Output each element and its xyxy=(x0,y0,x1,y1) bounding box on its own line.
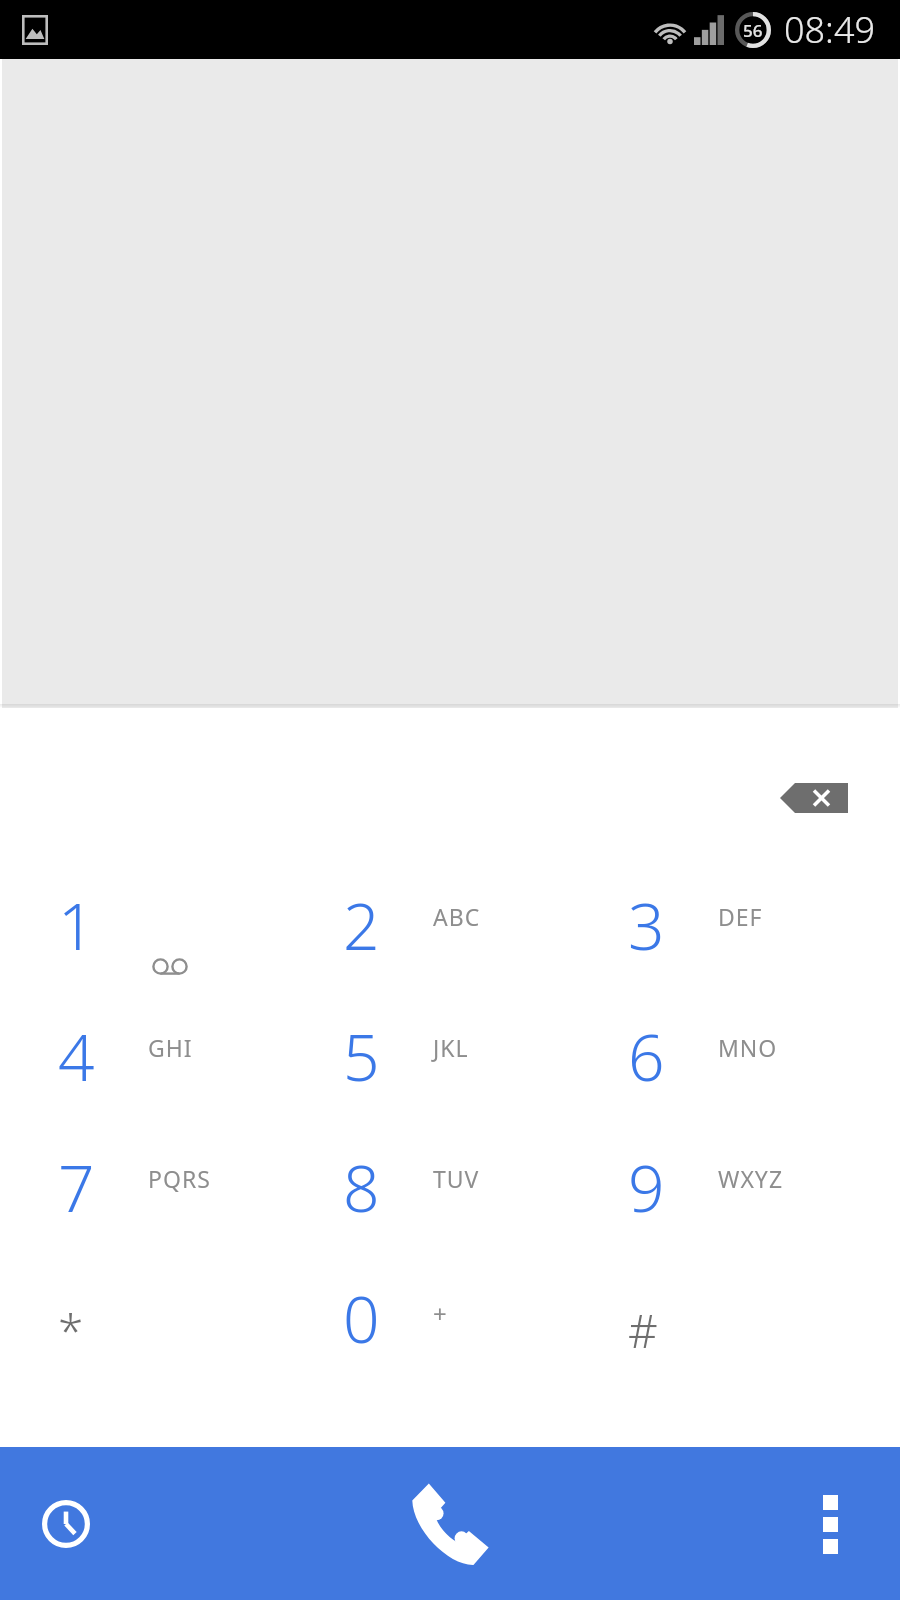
button[interactable]: Call history xyxy=(20,1478,112,1570)
button[interactable]: * xyxy=(0,1273,285,1404)
button[interactable]: 7 xyxy=(0,1142,285,1273)
staticText: TUV xyxy=(433,1163,480,1194)
staticText: GHI xyxy=(148,1032,193,1063)
staticText: 08:49 xyxy=(784,5,876,54)
button[interactable]: 1 xyxy=(0,880,285,1011)
staticText: 5 xyxy=(343,1013,423,1100)
staticText: 6 xyxy=(628,1013,708,1100)
staticText: 8 xyxy=(343,1144,423,1231)
staticText: 1 xyxy=(58,882,138,969)
button[interactable]: Delete xyxy=(762,768,866,828)
button[interactable]: 0 xyxy=(285,1273,570,1404)
button[interactable]: More options xyxy=(784,1478,876,1570)
staticText: 4 xyxy=(58,1013,138,1100)
staticText: 7 xyxy=(58,1144,138,1231)
button[interactable]: 3 xyxy=(570,880,855,1011)
button[interactable]: 5 xyxy=(285,1011,570,1142)
button[interactable]: 2 xyxy=(285,880,570,1011)
staticText: ABC xyxy=(433,901,481,932)
button[interactable]: Call xyxy=(385,1459,515,1589)
staticText: # xyxy=(628,1299,708,1362)
staticText: * xyxy=(58,1299,138,1362)
staticText: 2 xyxy=(343,882,423,969)
button[interactable]: # xyxy=(570,1273,855,1404)
button[interactable]: 8 xyxy=(285,1142,570,1273)
staticText: 0 xyxy=(343,1275,423,1362)
staticText: WXYZ xyxy=(718,1163,784,1194)
staticText: 9 xyxy=(628,1144,708,1231)
button[interactable]: 4 xyxy=(0,1011,285,1142)
staticText: 3 xyxy=(628,882,708,969)
staticText: JKL xyxy=(433,1032,469,1063)
staticText: PQRS xyxy=(148,1163,211,1194)
staticText: DEF xyxy=(718,901,763,932)
button[interactable]: 9 xyxy=(570,1142,855,1273)
staticText: + xyxy=(433,1297,447,1330)
staticText: 56 xyxy=(743,19,763,42)
staticText: MNO xyxy=(718,1032,778,1063)
button[interactable]: 6 xyxy=(570,1011,855,1142)
